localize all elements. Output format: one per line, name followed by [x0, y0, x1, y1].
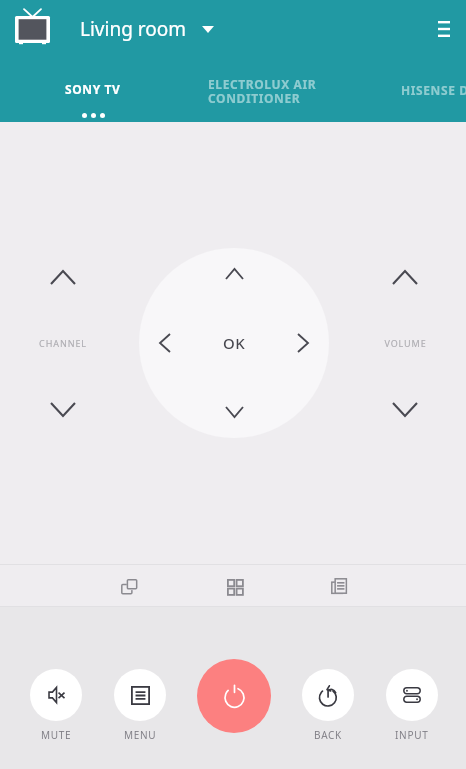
button[interactable]: Down — [211, 389, 257, 435]
button[interactable]: MUTE — [21, 669, 91, 742]
button[interactable]: HISENSE D — [385, 58, 466, 122]
button[interactable]: Picture in picture — [82, 565, 176, 607]
button[interactable]: BACK — [293, 669, 363, 742]
button[interactable]: VOLUME down — [377, 381, 433, 437]
button[interactable]: Guide — [292, 565, 386, 607]
staticText: VOLUME — [384, 337, 427, 349]
button[interactable]: CHANNEL down — [35, 381, 91, 437]
button[interactable]: Device — [11, 4, 54, 48]
staticText: HISENSE D — [401, 82, 466, 98]
button[interactable]: SONY TV — [0, 58, 185, 122]
button[interactable]: OK — [199, 308, 269, 378]
staticText: SONY TV — [65, 81, 121, 97]
staticText: MUTE — [41, 728, 72, 742]
staticText: CHANNEL — [39, 337, 87, 349]
button[interactable]: Power — [197, 659, 271, 733]
staticText: Living room — [80, 16, 187, 42]
button[interactable]: Up — [211, 251, 257, 297]
staticText: BACK — [314, 728, 342, 742]
button[interactable]: Left — [142, 320, 188, 366]
button[interactable]: Apps — [187, 565, 281, 607]
staticText: MENU — [124, 728, 157, 742]
staticText: INPUT — [395, 728, 429, 742]
staticText: ELECTROLUX AIR CONDITIONER — [208, 76, 317, 107]
button[interactable]: Menu — [422, 7, 466, 51]
button[interactable]: ELECTROLUX AIR CONDITIONER — [185, 58, 385, 122]
button[interactable]: Living room — [80, 16, 218, 42]
staticText: OK — [223, 333, 246, 353]
button[interactable]: Right — [280, 320, 326, 366]
button[interactable]: INPUT — [377, 669, 447, 742]
button[interactable]: CHANNEL up — [35, 249, 91, 305]
button[interactable]: VOLUME up — [377, 249, 433, 305]
button[interactable]: MENU — [105, 669, 175, 742]
